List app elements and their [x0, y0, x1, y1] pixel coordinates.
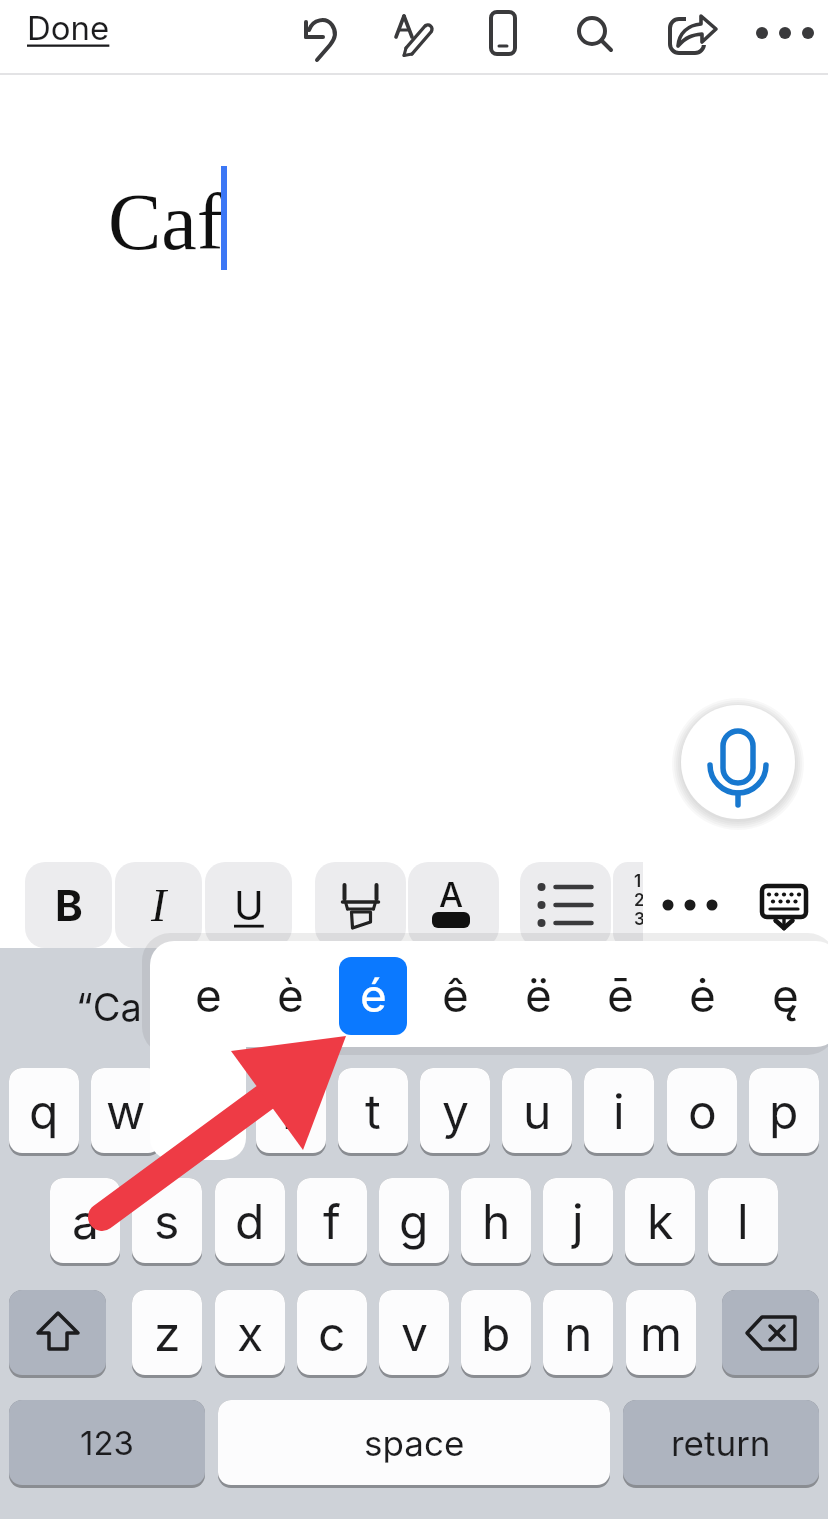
- button[interactable]: B: [25, 862, 112, 948]
- staticText: w: [106, 1082, 146, 1140]
- staticText: A: [439, 874, 464, 915]
- staticText: c: [318, 1304, 346, 1362]
- button[interactable]: x: [215, 1290, 285, 1375]
- button[interactable]: r: [256, 1068, 326, 1153]
- staticText: o: [688, 1082, 717, 1140]
- staticText: return: [671, 1422, 771, 1464]
- staticText: r: [282, 1082, 301, 1140]
- staticText: U: [234, 881, 264, 929]
- staticText: 3: [634, 909, 643, 930]
- button[interactable]: e: [173, 1068, 243, 1153]
- button[interactable]: [756, 880, 812, 936]
- staticText: é: [360, 967, 387, 1023]
- button[interactable]: return: [623, 1400, 819, 1485]
- button[interactable]: 123: [9, 1400, 205, 1485]
- button[interactable]: Done: [20, 6, 103, 46]
- button[interactable]: [755, 9, 803, 57]
- button[interactable]: [315, 862, 406, 948]
- staticText: a: [72, 1192, 99, 1250]
- button[interactable]: s: [132, 1178, 202, 1263]
- staticText: è: [277, 967, 304, 1023]
- button[interactable]: n: [543, 1290, 613, 1375]
- staticText: e: [194, 1082, 222, 1140]
- staticText: 1: [634, 871, 642, 892]
- staticText: s: [154, 1192, 180, 1250]
- button[interactable]: A: [408, 862, 499, 948]
- staticText: k: [647, 1192, 674, 1250]
- staticText: d: [235, 1192, 265, 1250]
- button[interactable]: u: [502, 1068, 572, 1153]
- button[interactable]: [520, 862, 611, 948]
- button[interactable]: y: [420, 1068, 490, 1153]
- button[interactable]: [662, 9, 710, 57]
- staticText: Done: [27, 8, 110, 48]
- button[interactable]: [681, 705, 795, 819]
- staticText: Caf: [108, 178, 224, 267]
- button[interactable]: h: [461, 1178, 531, 1263]
- button[interactable]: t: [338, 1068, 408, 1153]
- button[interactable]: b: [461, 1290, 531, 1375]
- button[interactable]: ê: [422, 958, 488, 1032]
- button[interactable]: k: [625, 1178, 695, 1263]
- button[interactable]: c: [297, 1290, 367, 1375]
- button[interactable]: space: [218, 1400, 610, 1485]
- staticText: t: [365, 1082, 381, 1140]
- button[interactable]: v: [379, 1290, 449, 1375]
- staticText: ê: [442, 967, 469, 1023]
- button[interactable]: i: [584, 1068, 654, 1153]
- staticText: b: [481, 1304, 511, 1362]
- staticText: e: [195, 967, 222, 1023]
- button[interactable]: [9, 1290, 106, 1375]
- button[interactable]: p: [749, 1068, 819, 1153]
- staticText: space: [364, 1422, 465, 1464]
- button[interactable]: è: [257, 958, 323, 1032]
- staticText: y: [442, 1082, 469, 1140]
- button[interactable]: 1: [613, 862, 643, 948]
- staticText: ę: [772, 967, 799, 1023]
- staticText: u: [523, 1082, 552, 1140]
- staticText: z: [154, 1304, 181, 1362]
- button[interactable]: [387, 9, 435, 57]
- button[interactable]: j: [543, 1178, 613, 1263]
- staticText: ė: [689, 967, 716, 1023]
- button[interactable]: d: [215, 1178, 285, 1263]
- button[interactable]: [479, 9, 527, 57]
- button[interactable]: I: [115, 862, 202, 948]
- staticText: B: [55, 880, 83, 931]
- button[interactable]: z: [132, 1290, 202, 1375]
- button[interactable]: [296, 9, 344, 57]
- staticText: g: [399, 1192, 429, 1250]
- button[interactable]: ē: [587, 958, 653, 1032]
- staticText: x: [237, 1304, 264, 1362]
- staticText: j: [572, 1192, 584, 1250]
- staticText: 2: [634, 890, 643, 911]
- staticText: f: [323, 1192, 341, 1250]
- staticText: q: [29, 1082, 59, 1140]
- button[interactable]: ę: [752, 958, 818, 1032]
- button[interactable]: é: [340, 958, 406, 1032]
- staticText: h: [482, 1192, 511, 1250]
- staticText: l: [737, 1192, 749, 1250]
- button[interactable]: g: [379, 1178, 449, 1263]
- button[interactable]: U: [205, 862, 292, 948]
- button[interactable]: e: [175, 958, 241, 1032]
- button[interactable]: [570, 9, 618, 57]
- staticText: 123: [80, 1423, 134, 1463]
- button[interactable]: f: [297, 1178, 367, 1263]
- staticText: v: [401, 1304, 428, 1362]
- staticText: I: [151, 880, 167, 931]
- button[interactable]: a: [50, 1178, 120, 1263]
- staticText: ē: [607, 967, 634, 1023]
- staticText: p: [769, 1082, 799, 1140]
- button[interactable]: q: [9, 1068, 79, 1153]
- button[interactable]: o: [667, 1068, 737, 1153]
- button[interactable]: m: [626, 1290, 696, 1375]
- button[interactable]: [722, 1290, 819, 1375]
- button[interactable]: l: [708, 1178, 778, 1263]
- staticText: m: [640, 1304, 683, 1362]
- staticText: i: [613, 1082, 625, 1140]
- button[interactable]: ė: [669, 958, 735, 1032]
- button[interactable]: [652, 880, 728, 930]
- button[interactable]: w: [91, 1068, 161, 1153]
- button[interactable]: ë: [505, 958, 571, 1032]
